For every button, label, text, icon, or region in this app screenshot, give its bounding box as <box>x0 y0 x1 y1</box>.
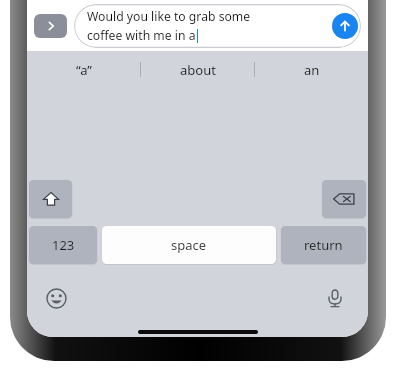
staticText: return <box>304 236 343 254</box>
button[interactable]: return <box>281 226 366 264</box>
staticText: an <box>304 61 320 79</box>
button[interactable]: Would you like to grab some <box>74 4 361 48</box>
button[interactable]: Expand <box>34 14 67 38</box>
button[interactable]: Emoji <box>43 285 69 311</box>
staticText: coffee with me in a <box>87 27 196 44</box>
button[interactable]: about <box>141 51 254 88</box>
button[interactable]: Backspace <box>322 180 366 218</box>
button[interactable]: Dictate <box>322 285 348 311</box>
staticText: space <box>171 236 207 254</box>
staticText: “a” <box>76 61 92 79</box>
button[interactable]: Shift <box>29 180 72 218</box>
button[interactable]: an <box>255 51 368 88</box>
staticText: Would you like to grab some <box>87 8 251 25</box>
staticText: 123 <box>52 236 75 254</box>
button[interactable]: Send <box>332 13 358 39</box>
button[interactable]: 123 <box>29 226 97 264</box>
staticText: about <box>180 61 216 79</box>
button[interactable]: space <box>102 226 276 264</box>
button[interactable]: “a” <box>27 51 140 88</box>
